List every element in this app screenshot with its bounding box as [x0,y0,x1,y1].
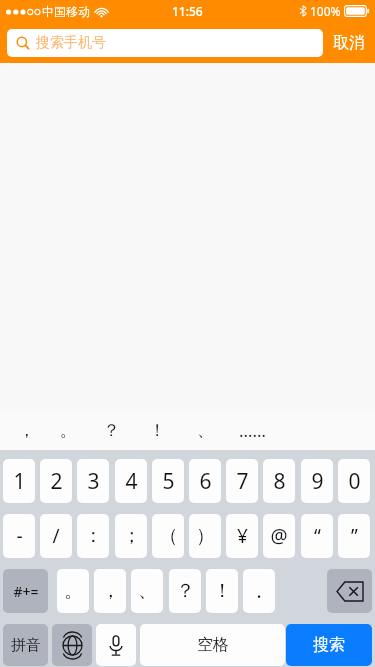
button[interactable]: 4 [115,459,147,503]
button[interactable]: / [40,514,72,558]
staticText: 、 [197,420,214,441]
button[interactable]: 2 [40,459,72,503]
staticText: ” [351,523,358,549]
staticText: （ [159,524,178,548]
button[interactable]: 5 [152,459,184,503]
staticText: #+= [13,582,39,601]
staticText: 11:56 [172,3,203,19]
staticText: 6 [199,467,212,496]
staticText: 。 [64,579,83,603]
button[interactable]: 3 [77,459,109,503]
staticText: 空格 [197,635,229,655]
staticText: 。 [60,420,77,441]
staticText: / [52,523,60,549]
button[interactable]: 搜索 [286,624,372,666]
button[interactable]: Delete [327,569,372,613]
button[interactable]: 。 [57,569,89,613]
staticText: ） [196,524,215,548]
button[interactable]: ¥ [226,514,258,558]
button[interactable]: 8 [263,459,295,503]
staticText: 搜索手机号 [36,34,106,52]
staticText: 0 [348,467,361,496]
button[interactable]: 7 [226,459,258,503]
button[interactable]: Voice input [96,624,136,666]
button[interactable]: Switch keyboard [52,624,92,666]
staticText: 8 [273,467,286,496]
button[interactable]: ： [77,514,109,558]
button[interactable]: ！ [206,569,238,613]
staticText: . [256,578,262,604]
button[interactable]: 、 [131,569,163,613]
staticText: ！ [213,579,232,603]
button[interactable]: 拼音 [3,624,48,666]
button[interactable]: ？ [169,569,201,613]
staticText: 取消 [333,33,365,53]
staticText: …… [239,419,266,442]
button[interactable]: ” [338,514,370,558]
staticText: 5 [162,467,175,496]
button[interactable]: ， [94,569,126,613]
button[interactable]: “ [301,514,333,558]
button[interactable]: 、 [189,414,221,446]
button[interactable]: 9 [301,459,333,503]
staticText: ？ [103,420,120,441]
button[interactable]: ！ [141,414,173,446]
button[interactable]: . [243,569,275,613]
button[interactable]: 1 [3,459,35,503]
button[interactable]: ； [115,514,147,558]
staticText: ， [18,420,35,441]
staticText: 4 [125,467,138,496]
staticText: - [16,523,23,549]
button[interactable]: 取消 [323,22,375,63]
button[interactable]: 。 [52,414,84,446]
staticText: 中国移动 [42,4,90,19]
staticText: ； [122,524,141,548]
button[interactable]: 0 [338,459,370,503]
staticText: “ [314,523,321,549]
staticText: ， [101,579,120,603]
staticText: ！ [149,420,166,441]
staticText: 3 [87,467,100,496]
button[interactable]: …… [236,414,268,446]
staticText: 、 [138,579,157,603]
button[interactable]: ？ [95,414,127,446]
staticText: 2 [50,467,63,496]
staticText: ¥ [237,523,248,549]
button[interactable]: 6 [189,459,221,503]
staticText: ： [84,524,103,548]
staticText: ？ [176,579,195,603]
button[interactable]: （ [152,514,184,558]
staticText: 搜索 [313,635,345,655]
staticText: 7 [236,467,249,496]
staticText: 9 [311,467,324,496]
staticText: 100% [310,3,341,19]
button[interactable]: #+= [3,569,48,613]
button[interactable]: ） [189,514,221,558]
button[interactable]: ， [10,414,42,446]
button[interactable]: - [3,514,35,558]
button[interactable]: 空格 [140,624,285,666]
staticText: 1 [13,467,26,496]
staticText: 拼音 [11,636,41,655]
button[interactable]: 搜索手机号 [7,29,323,57]
button[interactable]: @ [263,514,295,558]
staticText: @ [270,523,288,549]
